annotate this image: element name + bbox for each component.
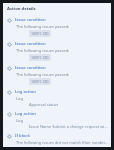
staticText: Log: [16, 118, 23, 123]
staticText: The following issues passed:: [16, 48, 70, 53]
button[interactable]: Action type icon: [3, 15, 111, 39]
staticText: If block: [15, 133, 30, 139]
button[interactable]: Action type icon: [3, 63, 111, 87]
staticText: Issue condition: [15, 17, 46, 23]
button[interactable]: Action type icon: [3, 39, 111, 63]
staticText: 10001-740: [31, 79, 49, 84]
button[interactable]: Action type icon: [3, 87, 111, 109]
staticText: The following issues passed:: [16, 24, 70, 29]
other: Action type icon: [7, 66, 12, 71]
other: Action type icon: [7, 90, 12, 95]
staticText: The following issues passed:: [16, 72, 70, 77]
other: Action type icon: [7, 42, 12, 47]
staticText: Approval status: [29, 102, 59, 107]
staticText: The following issues did not match filte…: [16, 140, 108, 145]
staticText: Log action: [15, 89, 36, 95]
staticText: Issue Name Submit a change request with …: [29, 124, 108, 129]
button[interactable]: Action type icon: [3, 131, 111, 147]
staticText: Issue condition: [15, 65, 46, 71]
staticText: 10001-740: [31, 31, 49, 36]
staticText: Issue condition: [15, 41, 46, 47]
staticText: Log: [16, 96, 23, 101]
other: Action type icon: [7, 112, 12, 117]
staticText: Log action: [15, 111, 36, 117]
other: Action type icon: [7, 134, 12, 139]
staticText: 10001-740: [31, 55, 49, 60]
other: Action type icon: [7, 18, 12, 23]
button[interactable]: Action type icon: [3, 109, 111, 131]
staticText: Action details: [7, 6, 36, 12]
